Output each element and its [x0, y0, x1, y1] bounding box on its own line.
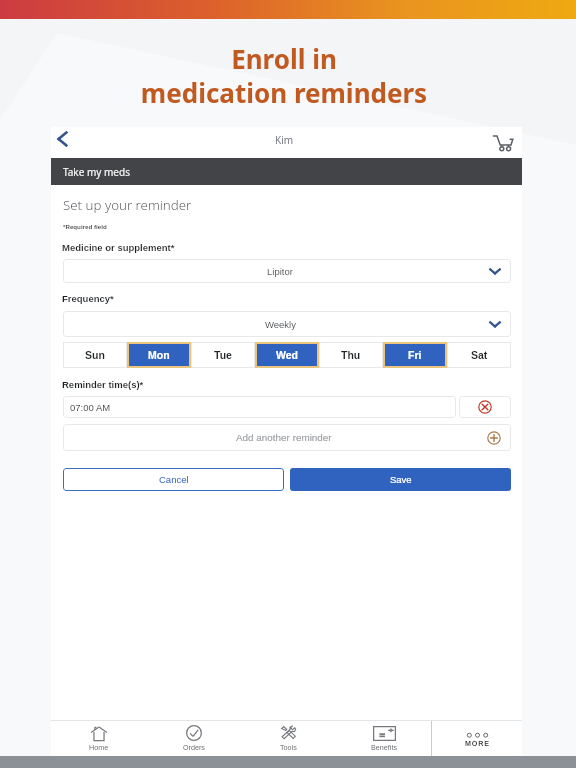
staticText: Wed: [276, 349, 298, 361]
staticText: 07:00 AM: [70, 402, 111, 413]
button[interactable]: Back: [49, 126, 75, 152]
button[interactable]: Save: [290, 468, 511, 491]
button[interactable]: Tue: [191, 342, 255, 368]
button[interactable]: Add another reminder: [63, 424, 511, 451]
staticText: Sun: [85, 349, 105, 361]
button[interactable]: Weekly: [63, 311, 511, 337]
button[interactable]: Mon: [127, 342, 191, 368]
staticText: Take my meds: [63, 165, 130, 179]
button[interactable]: Sun: [63, 342, 127, 368]
staticText: Benefits: [371, 743, 397, 751]
staticText: Orders: [183, 743, 205, 751]
staticText: Add another reminder: [236, 432, 332, 443]
staticText: Mon: [148, 349, 170, 361]
staticText: Lipitor: [267, 266, 293, 277]
button[interactable]: Cancel: [63, 468, 284, 491]
button[interactable]: Lipitor: [63, 259, 511, 283]
staticText: Enroll in: [0, 41, 572, 76]
button[interactable]: Tools: [241, 721, 336, 756]
staticText: Frequency*: [62, 293, 114, 304]
staticText: Sat: [471, 349, 488, 361]
button[interactable]: Fri: [383, 342, 447, 368]
button[interactable]: 07:00 AM: [63, 396, 456, 418]
staticText: Tools: [280, 743, 297, 751]
staticText: Weekly: [265, 319, 296, 330]
staticText: Cancel: [159, 474, 189, 485]
staticText: Thu: [341, 349, 361, 361]
staticText: Save: [390, 474, 412, 485]
staticText: Set up your reminder: [63, 196, 192, 214]
button[interactable]: Sat: [447, 342, 511, 368]
button[interactable]: Home: [51, 721, 146, 756]
staticText: Home: [89, 743, 109, 751]
staticText: Reminder time(s)*: [62, 379, 144, 390]
staticText: Kim: [275, 133, 294, 147]
button[interactable]: Remove reminder: [459, 396, 511, 418]
staticText: Medicine or supplement*: [62, 242, 175, 253]
staticText: Tue: [214, 349, 232, 361]
button[interactable]: Wed: [255, 342, 319, 368]
button[interactable]: More: [432, 721, 522, 756]
button[interactable]: Thu: [319, 342, 383, 368]
staticText: *Required field: [63, 223, 107, 230]
staticText: MORE: [465, 739, 490, 747]
staticText: Fri: [408, 349, 422, 361]
staticText: medication reminders: [0, 75, 572, 110]
button[interactable]: Shopping cart: [492, 132, 514, 154]
button[interactable]: Benefits: [336, 721, 431, 756]
button[interactable]: Orders: [146, 721, 241, 756]
